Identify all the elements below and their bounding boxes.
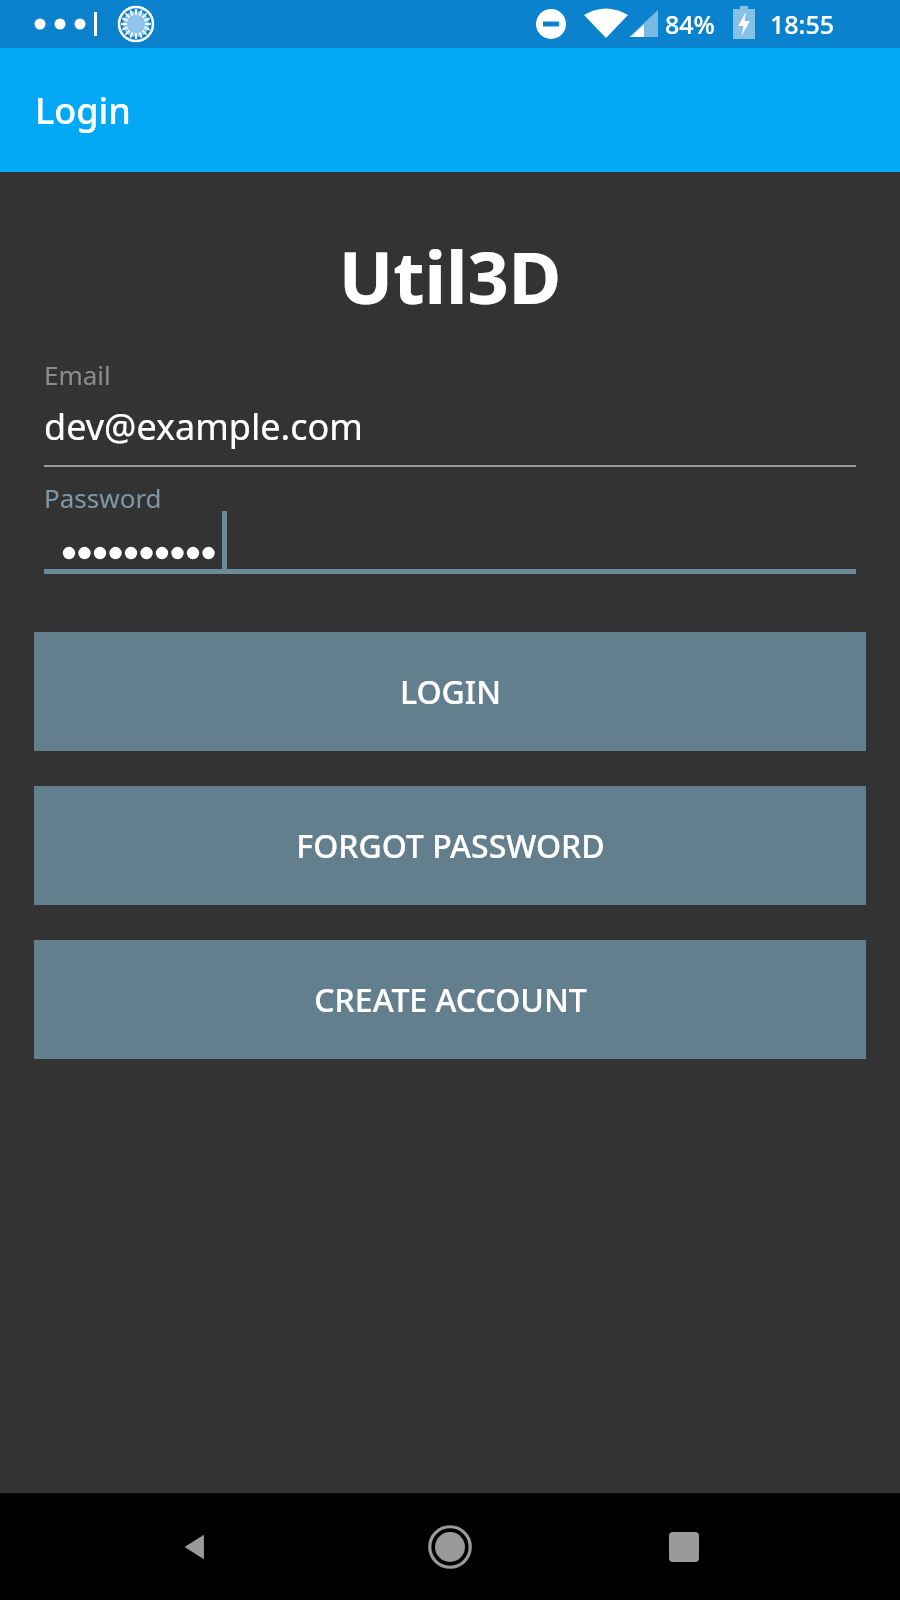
staticText: FORGOT PASSWORD xyxy=(296,824,605,868)
button[interactable]: Recent apps xyxy=(648,1511,720,1583)
staticText: dev@example.com xyxy=(44,402,363,451)
button[interactable]: CREATE ACCOUNT xyxy=(34,940,866,1059)
button[interactable]: Home xyxy=(414,1511,486,1583)
button[interactable]: Password xyxy=(44,480,856,574)
staticText: Login xyxy=(35,86,131,135)
button[interactable]: FORGOT PASSWORD xyxy=(34,786,866,905)
staticText: Util3D xyxy=(0,227,900,325)
staticText: Email xyxy=(44,357,111,392)
button[interactable]: Email xyxy=(44,357,856,467)
button[interactable]: Back xyxy=(160,1511,232,1583)
button[interactable]: LOGIN xyxy=(34,632,866,751)
staticText: 18:55 xyxy=(770,7,835,41)
staticText: 84% xyxy=(665,7,715,41)
staticText: CREATE ACCOUNT xyxy=(314,978,587,1022)
staticText: LOGIN xyxy=(400,670,501,714)
staticText: Password xyxy=(44,480,162,515)
